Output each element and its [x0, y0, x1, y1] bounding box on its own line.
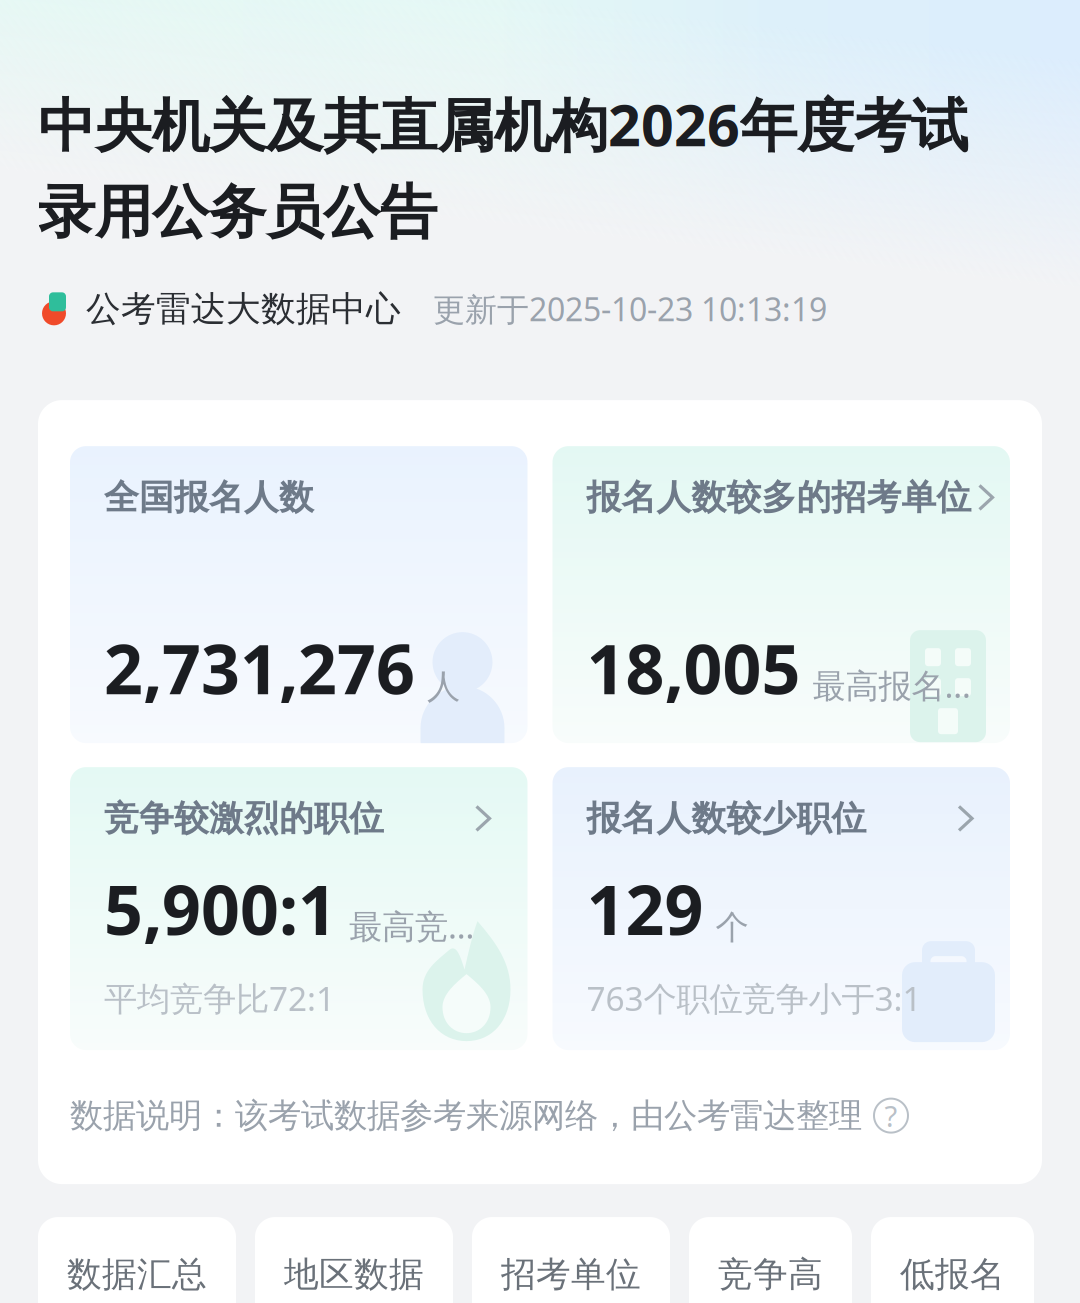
staticText: 平均竞争比72:1: [104, 976, 335, 1020]
staticText: 人: [427, 666, 460, 707]
staticText: 763个职位竞争小于3:1: [586, 976, 921, 1020]
staticText: 招考单位: [501, 1253, 641, 1296]
staticText: 低报名: [900, 1253, 1005, 1296]
staticText: 个: [715, 907, 748, 948]
staticText: 最高报名…: [812, 663, 970, 707]
staticText: 18,005: [586, 623, 800, 713]
button[interactable]: 全国报名人数: [70, 446, 527, 743]
staticText: 地区数据: [284, 1253, 424, 1296]
button[interactable]: 招考单位: [472, 1217, 670, 1303]
staticText: 竞争较激烈的职位: [104, 797, 384, 840]
staticText: 报名人数较多的招考单位: [586, 476, 971, 519]
staticText: 全国报名人数: [104, 476, 314, 519]
button[interactable]: 地区数据: [255, 1217, 453, 1303]
staticText: 中央机关及其直属机构2026年度考试: [38, 86, 968, 162]
staticText: 5,900:1: [104, 864, 337, 954]
staticText: 129: [586, 864, 703, 954]
staticText: 数据汇总: [67, 1253, 207, 1296]
button[interactable]: 低报名: [871, 1217, 1034, 1303]
button[interactable]: 竞争较激烈的职位: [70, 767, 527, 1050]
button[interactable]: 竞争高: [689, 1217, 852, 1303]
staticText: ?: [884, 1096, 897, 1135]
staticText: 2,731,276: [104, 623, 415, 713]
staticText: 最高竞…: [349, 904, 474, 948]
staticText: 更新于2025-10-23 10:13:19: [433, 288, 827, 330]
button[interactable]: 报名人数较多的招考单位: [552, 446, 1010, 743]
staticText: 竞争高: [718, 1253, 823, 1296]
button[interactable]: 报名人数较少职位: [552, 767, 1010, 1050]
staticText: 报名人数较少职位: [586, 797, 866, 840]
staticText: 公考雷达大数据中心: [86, 288, 401, 330]
staticText: 录用公务员公告: [38, 177, 437, 247]
button[interactable]: 数据汇总: [38, 1217, 236, 1303]
staticText: 数据说明：该考试数据参考来源网络，由公考雷达整理: [70, 1095, 862, 1136]
